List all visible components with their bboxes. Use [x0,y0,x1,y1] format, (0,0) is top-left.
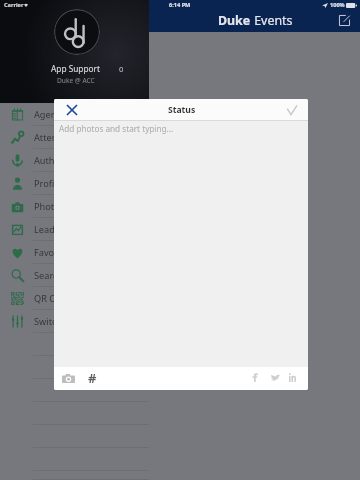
button[interactable]: Agenda [0,103,149,126]
staticText: Duke @ ACC [57,76,95,85]
staticText: Add photos and start typing... [59,123,174,134]
staticText: Leaderboard [34,223,90,236]
staticText: Status [168,104,196,116]
button[interactable]: Share to LinkedIn [284,367,300,388]
staticText: Duke [218,12,251,29]
staticText: QR Code [34,292,72,305]
staticText: App Support [51,63,100,74]
button[interactable]: Search [0,264,149,287]
button[interactable]: Add photo [59,368,77,388]
staticText: Switch Events [34,315,93,328]
button[interactable]: Photos [0,195,149,218]
button[interactable]: Favorites [0,241,149,264]
button[interactable]: Share to Twitter [267,367,283,388]
button[interactable]: Profile [0,172,149,195]
staticText: Events [251,12,293,29]
staticText: 0 [119,64,124,74]
staticText: Profile [34,177,62,190]
staticText: Attendees [34,131,78,144]
staticText: Photos [34,200,65,213]
staticText: 100% [330,1,345,9]
staticText: Carrier [4,1,24,9]
staticText: # [88,369,97,387]
button[interactable]: QR Code [0,287,149,310]
button[interactable]: Authors [0,149,149,172]
staticText: 6:14 PM [169,1,191,9]
button[interactable]: Share to Facebook [247,367,263,388]
staticText: Search [34,269,64,282]
button[interactable]: Leaderboard [0,218,149,241]
button[interactable]: Compose [334,10,354,30]
button[interactable]: Attendees [0,126,149,149]
button[interactable]: Profile photo [54,9,100,55]
button[interactable]: Switch Events [0,310,149,333]
button[interactable]: Hashtag [84,367,100,388]
staticText: Authors [34,154,69,167]
staticText: Favorites [34,246,74,259]
staticText: Agenda [34,108,68,121]
button[interactable]: Close [58,99,85,120]
button[interactable]: Post [279,99,305,120]
